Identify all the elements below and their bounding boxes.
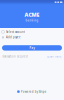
button[interactable]: Select account — [0, 29, 64, 34]
staticText: banking — [25, 19, 38, 22]
staticText: Add payee — [6, 35, 21, 39]
staticText: Pay — [29, 46, 34, 50]
button[interactable]: Add payee — [0, 34, 64, 40]
button[interactable]: Pay — [2, 45, 62, 51]
staticText: Select account — [6, 30, 25, 34]
staticText: Learn more — [47, 55, 62, 58]
staticText: Transaction secured — [2, 55, 28, 58]
staticText: ACME — [24, 11, 39, 18]
button[interactable]: Learn more — [47, 55, 62, 58]
staticText: Powered by Stripe — [21, 90, 47, 93]
